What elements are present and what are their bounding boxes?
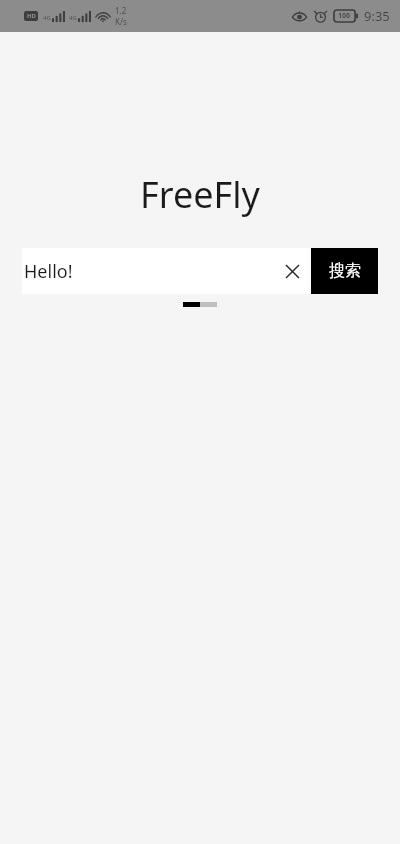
button[interactable]: Clear text xyxy=(277,256,307,286)
staticText: Hello! xyxy=(24,259,277,284)
staticText: 4G xyxy=(43,14,51,22)
staticText: 100 xyxy=(338,11,351,21)
staticText: 9:35 xyxy=(364,7,390,25)
staticText: 搜索 xyxy=(329,261,361,281)
button[interactable]: 搜索 xyxy=(311,248,378,294)
staticText: FreeFly xyxy=(0,170,400,219)
staticText: 1.2 xyxy=(115,5,127,16)
staticText: HD xyxy=(27,12,36,20)
button[interactable]: Hello! xyxy=(22,248,311,294)
staticText: K/s xyxy=(115,16,127,27)
staticText: 4G xyxy=(69,14,77,22)
